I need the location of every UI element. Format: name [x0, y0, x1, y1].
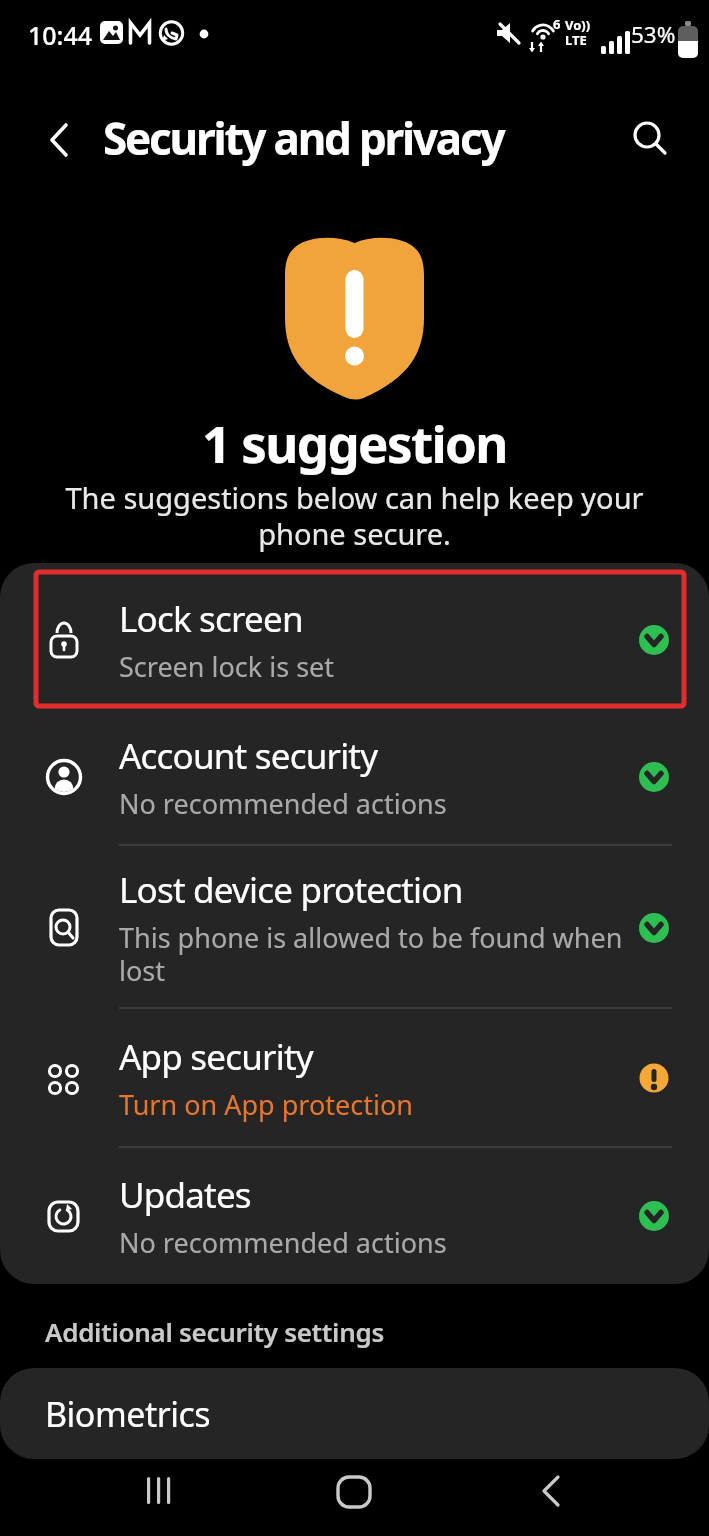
staticText: 53% [631, 19, 676, 50]
staticText: 6 [553, 15, 561, 33]
staticText: This phone is allowed to be found when l… [119, 919, 623, 989]
staticText: Screen lock is set [119, 648, 335, 685]
button[interactable] [130, 1468, 186, 1524]
staticText: Updates [119, 1171, 251, 1219]
button[interactable]: App security [0, 1009, 709, 1147]
staticText: Lost device protection [119, 866, 463, 914]
staticText: Additional security settings [45, 1314, 384, 1349]
button[interactable]: Biometrics [0, 1368, 709, 1459]
staticText: The suggestions below can help keep your… [65, 478, 644, 554]
staticText: 10:44 [28, 18, 93, 52]
button[interactable]: Account security [0, 707, 709, 846]
button[interactable]: Updates [0, 1147, 709, 1284]
staticText: 1 suggestion [202, 408, 507, 477]
button[interactable] [44, 122, 74, 158]
staticText: No recommended actions [119, 785, 447, 822]
staticText: App security [119, 1033, 313, 1081]
staticText: Turn on App protection [119, 1086, 413, 1123]
staticText: Vo)) [565, 16, 591, 34]
button[interactable]: Lock screen [0, 568, 709, 712]
staticText: LTE [565, 31, 587, 49]
button[interactable]: Lost device protection [0, 846, 709, 1009]
staticText: Lock screen [119, 595, 303, 643]
staticText: Security and privacy [103, 108, 504, 168]
button[interactable] [630, 118, 670, 158]
staticText: Biometrics [45, 1391, 211, 1437]
button[interactable] [326, 1468, 382, 1524]
button[interactable] [522, 1468, 578, 1524]
staticText: Account security [119, 732, 378, 780]
staticText: No recommended actions [119, 1224, 447, 1261]
